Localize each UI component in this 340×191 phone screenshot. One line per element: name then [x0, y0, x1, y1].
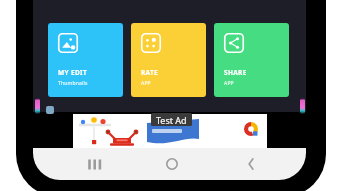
button[interactable]: Home: [160, 157, 183, 171]
staticText: Test Ad: [156, 114, 187, 126]
button[interactable]: Test Ad: [73, 114, 267, 148]
button[interactable]: Back: [239, 157, 262, 171]
staticText: RATE: [141, 68, 159, 77]
button[interactable]: Recent apps: [82, 157, 105, 171]
staticText: Thumbnails: [58, 80, 88, 87]
staticText: MY EDIT: [58, 68, 88, 77]
button[interactable]: RATE: [131, 23, 206, 97]
button[interactable]: MY EDIT: [48, 23, 123, 97]
staticText: APP: [224, 80, 234, 87]
button[interactable]: SHARE: [214, 23, 289, 97]
staticText: SHARE: [224, 68, 247, 77]
staticText: APP: [141, 80, 151, 87]
